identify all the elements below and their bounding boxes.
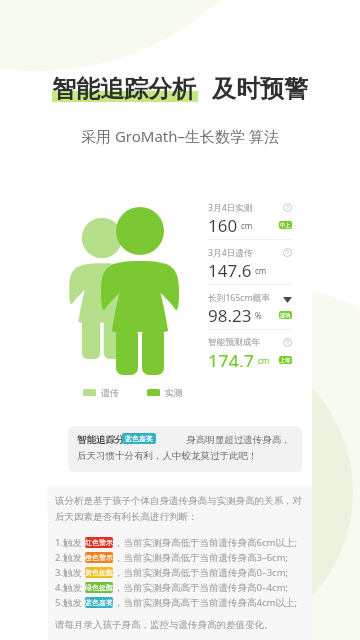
staticText: ，当前实测身高低于当前遗传身高6cm以上; xyxy=(114,536,297,549)
staticText: ，当前实测身高高于当前遗传身高4cm以上; xyxy=(114,596,297,609)
staticText: ，当前实测身高高于当前遗传身高0–4cm; xyxy=(114,581,289,594)
staticText: 实测 xyxy=(165,387,183,398)
staticText: 2.触发 xyxy=(55,551,82,564)
staticText: 及时预警 xyxy=(212,74,308,104)
staticText: 3.触发 xyxy=(55,566,82,579)
other: 说明 xyxy=(283,338,292,347)
staticText: cm xyxy=(258,355,270,366)
other: 说明 xyxy=(283,248,292,257)
staticText: 174.7 xyxy=(208,349,255,367)
staticText: 黄色提醒 xyxy=(85,568,113,577)
staticText: 3月4日遗传 xyxy=(208,247,253,259)
staticText: 请每月录入孩子身高，监控与遗传身高的差值变化。 xyxy=(55,619,274,631)
staticText: 波动 xyxy=(280,312,291,319)
staticText: 中上 xyxy=(280,222,291,229)
staticText: % xyxy=(255,310,262,321)
staticText: 4.触发 xyxy=(55,581,82,594)
staticText: 智能预测成年 xyxy=(208,337,261,348)
staticText: ，当前实测身高低于当前遗传身高0–3cm; xyxy=(114,566,289,579)
staticText: 该分析是基于孩子个体自身遗传身高与实测身高的关系，对后天因素是否有利长高进行判断… xyxy=(55,495,307,523)
staticText: cm xyxy=(241,220,253,231)
staticText: 长到165cm概率 xyxy=(208,292,270,304)
staticText: 智能追踪分析 xyxy=(52,74,196,104)
staticText: cm xyxy=(255,265,267,276)
button[interactable]: 3月4日实测 xyxy=(208,201,292,232)
staticText: 160 xyxy=(208,214,238,232)
staticText: 5.触发 xyxy=(55,596,82,609)
staticText: 3月4日实测 xyxy=(208,202,253,214)
button[interactable]: 长到165cm概率 xyxy=(208,291,292,322)
staticText: 1.触发 xyxy=(55,536,82,549)
staticText: 采用 GroMath–生长数学 算法 xyxy=(0,126,360,146)
staticText: 智能追踪分析： 身高明显超过遗传身高，后天习惯十分有利，人中蛟龙莫过于此吧！ xyxy=(77,433,294,462)
button[interactable]: 3月4日遗传 xyxy=(208,246,292,277)
staticText: 98.23 xyxy=(208,304,252,322)
staticText: ，当前实测身高低于当前遗传身高3–6cm; xyxy=(114,551,289,564)
staticText: 蓝色嘉奖 xyxy=(85,598,113,607)
staticText: 147.6 xyxy=(208,259,252,277)
staticText: 红色警示 xyxy=(85,538,113,547)
staticText: 遗传 xyxy=(101,387,119,398)
other: 说明 xyxy=(283,203,292,212)
button[interactable]: 智能预测成年 xyxy=(208,336,292,367)
staticText: 橙色警示 xyxy=(85,553,113,562)
staticText: 上等 xyxy=(280,357,291,364)
staticText: 绿色提醒 xyxy=(85,583,113,592)
staticText: 蓝色嘉奖 xyxy=(125,434,153,443)
button[interactable]: 智能追踪分析： 身高明显超过遗传身高，后天习惯十分有利，人中蛟龙莫过于此吧！ xyxy=(68,426,302,472)
other: 展开 xyxy=(283,297,292,303)
